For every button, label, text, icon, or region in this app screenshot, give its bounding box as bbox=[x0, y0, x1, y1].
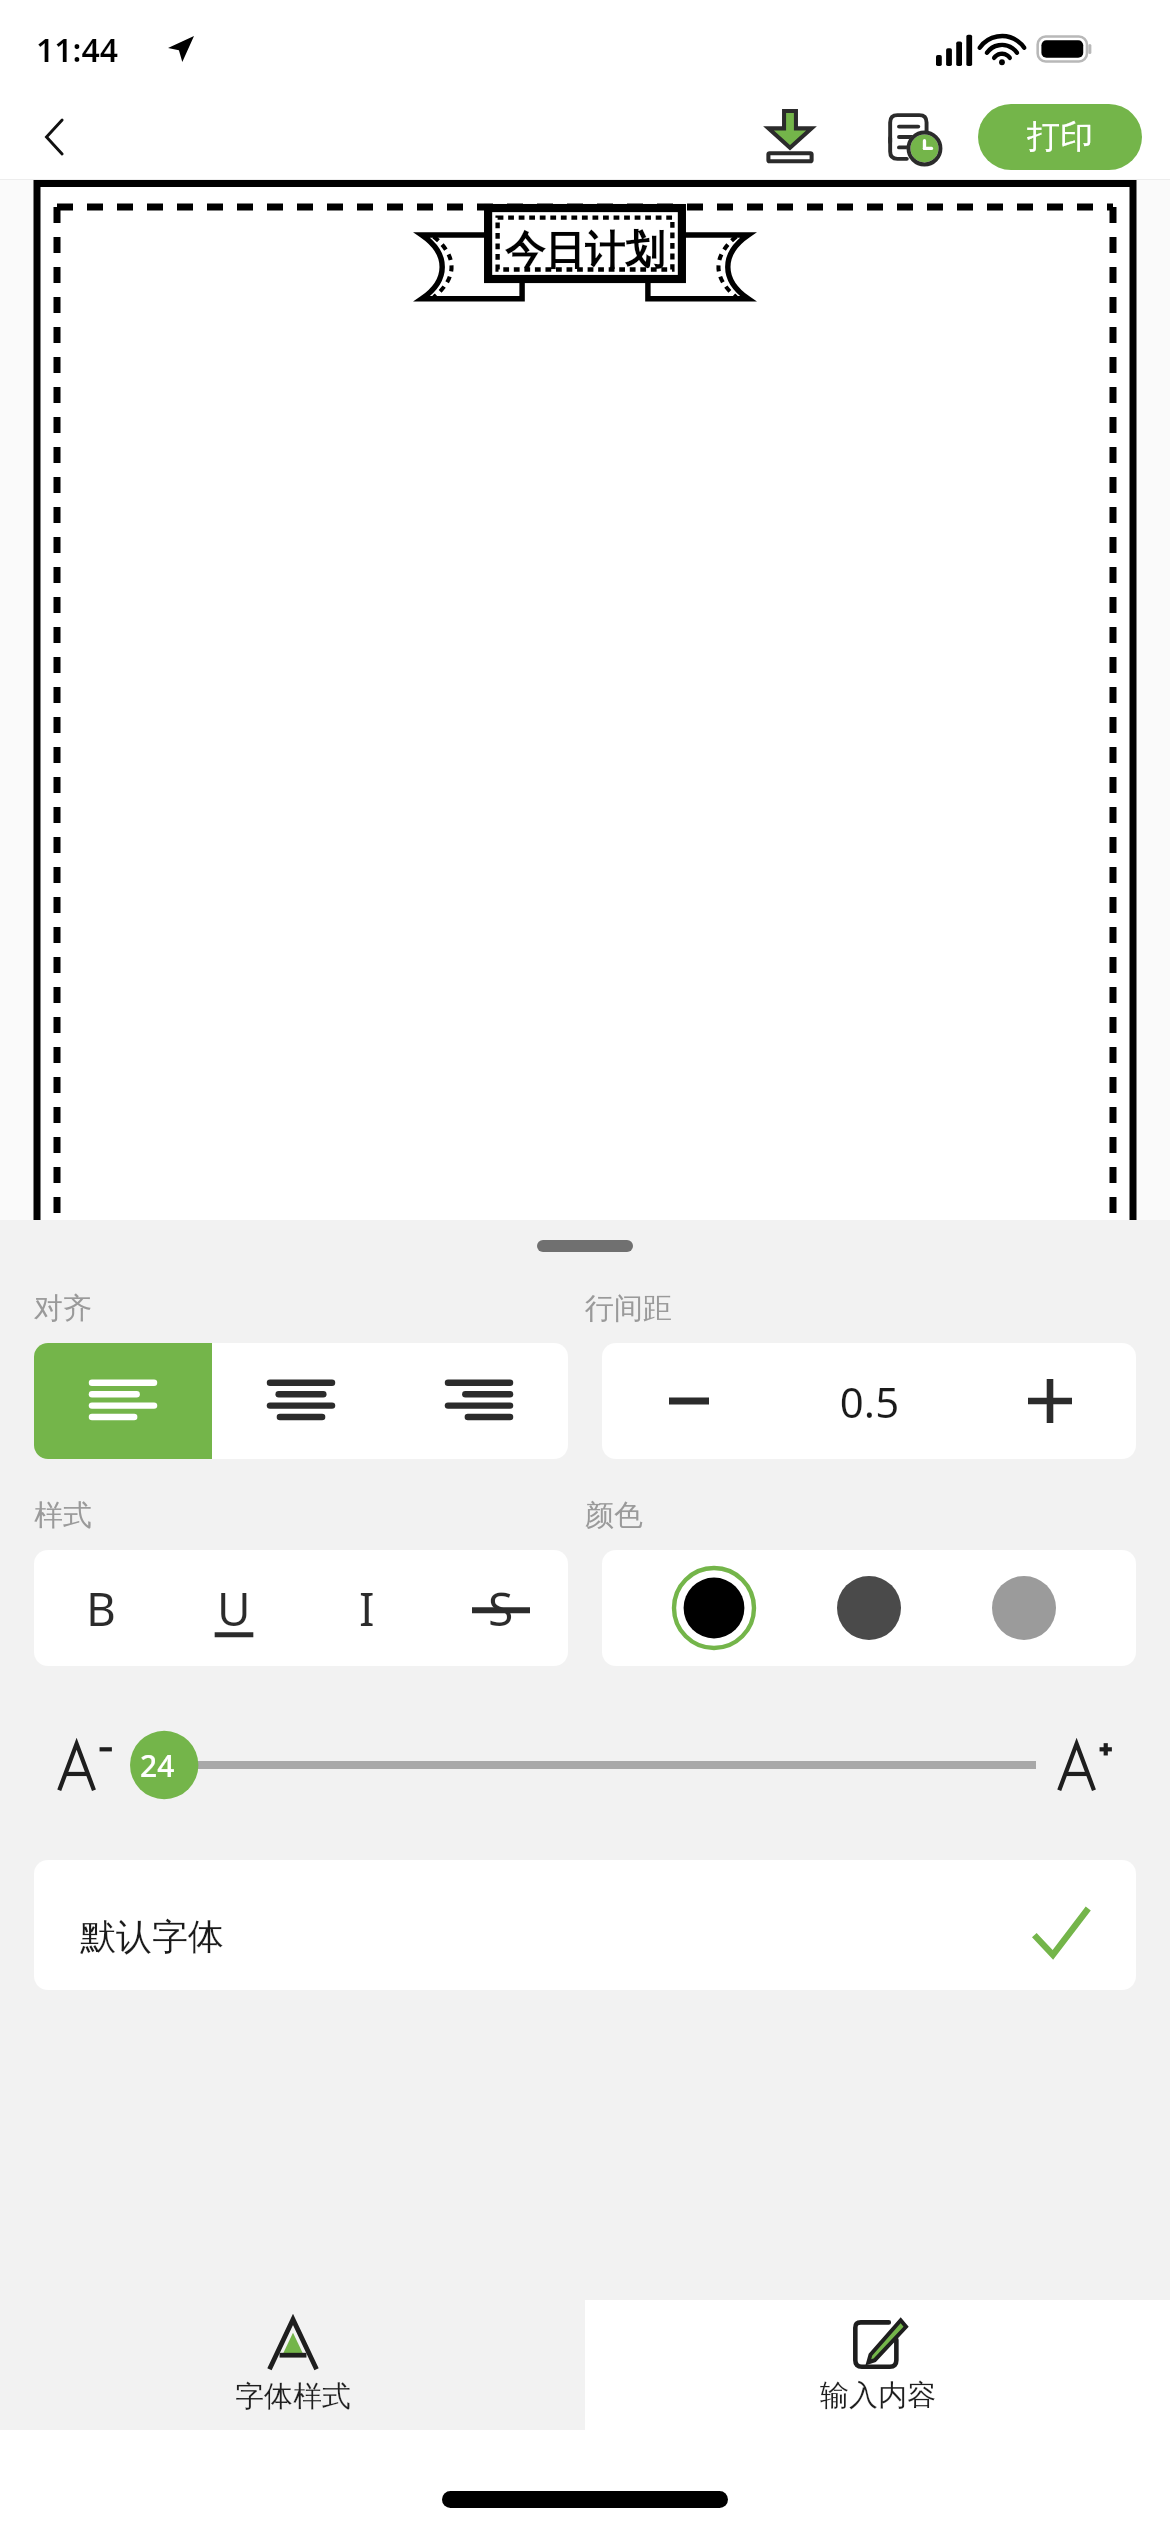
button[interactable]: Underline bbox=[167, 1550, 300, 1666]
button[interactable]: Decrease line spacing bbox=[602, 1343, 775, 1459]
staticText: 打印 bbox=[1027, 116, 1093, 158]
button[interactable]: Dark gray bbox=[826, 1565, 912, 1651]
staticText: 输入内容 bbox=[820, 2377, 936, 2414]
staticText: 0.5 bbox=[775, 1373, 964, 1430]
staticText: S bbox=[488, 1577, 514, 1640]
button[interactable]: 输入内容 bbox=[585, 2300, 1170, 2430]
staticText: 对齐 bbox=[34, 1290, 585, 1327]
staticText: 行间距 bbox=[585, 1290, 1136, 1327]
button[interactable]: History bbox=[864, 94, 960, 180]
button[interactable]: Gray bbox=[981, 1565, 1067, 1651]
button[interactable]: Decrease font size bbox=[40, 1720, 130, 1810]
button[interactable]: Strikethrough bbox=[434, 1550, 568, 1666]
staticText: 字体样式 bbox=[235, 2378, 351, 2415]
button[interactable]: Align left bbox=[34, 1343, 212, 1459]
staticText: I bbox=[359, 1577, 375, 1640]
button[interactable]: 默认字体 bbox=[34, 1860, 1136, 1990]
button[interactable]: Increase font size bbox=[1040, 1720, 1130, 1810]
button[interactable]: Download bbox=[742, 94, 838, 180]
staticText: 颜色 bbox=[585, 1497, 1136, 1534]
staticText: 默认字体 bbox=[80, 1914, 224, 1959]
button[interactable]: Align right bbox=[390, 1343, 568, 1459]
staticText: 11:44 bbox=[36, 28, 119, 72]
staticText: U bbox=[217, 1577, 251, 1640]
staticText: 24 bbox=[140, 1745, 175, 1786]
button[interactable]: Increase line spacing bbox=[964, 1343, 1136, 1459]
button[interactable]: 打印 bbox=[978, 104, 1142, 170]
staticText: 样式 bbox=[34, 1497, 585, 1534]
button[interactable]: Align center bbox=[212, 1343, 390, 1459]
button[interactable]: Bold bbox=[34, 1550, 167, 1666]
button[interactable]: Italic bbox=[300, 1550, 434, 1666]
button[interactable]: 字体样式 bbox=[0, 2300, 585, 2430]
staticText: 今日计划 bbox=[505, 225, 665, 275]
staticText: B bbox=[86, 1577, 116, 1640]
button[interactable]: Black bbox=[671, 1565, 757, 1651]
button[interactable]: Back bbox=[18, 99, 94, 175]
